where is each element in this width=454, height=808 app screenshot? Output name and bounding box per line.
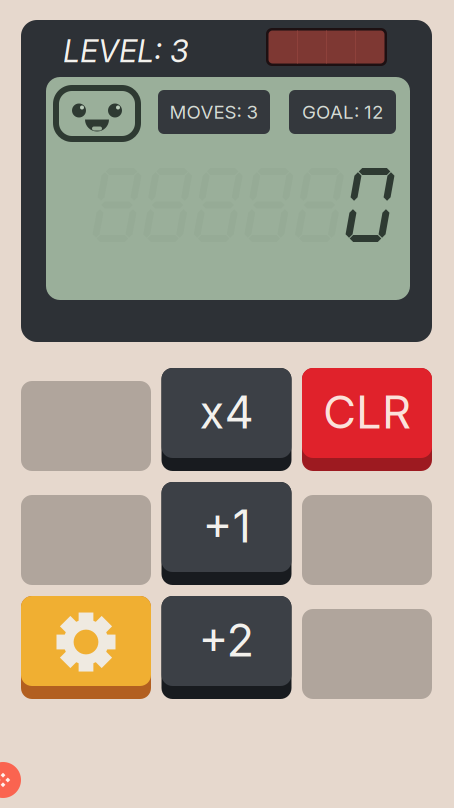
- button[interactable]: Empty slot: [21, 482, 151, 585]
- staticText: LEVEL: 3: [63, 32, 189, 69]
- staticText: +2: [198, 613, 254, 667]
- button[interactable]: Clear: [302, 368, 432, 471]
- button[interactable]: Multiply by 4: [161, 368, 291, 471]
- button[interactable]: Plus 2: [161, 596, 291, 699]
- button[interactable]: Empty slot: [302, 596, 432, 699]
- staticText: +1: [202, 499, 250, 553]
- staticText: GOAL: 12: [302, 101, 383, 123]
- button[interactable]: More options: [0, 762, 21, 798]
- staticText: x4: [199, 385, 253, 439]
- button[interactable]: Empty slot: [21, 368, 151, 471]
- staticText: MOVES: 3: [169, 101, 258, 123]
- button[interactable]: Plus 1: [161, 482, 291, 585]
- button[interactable]: Empty slot: [302, 482, 432, 585]
- button[interactable]: Settings: [21, 596, 151, 699]
- staticText: CLR: [323, 385, 411, 439]
